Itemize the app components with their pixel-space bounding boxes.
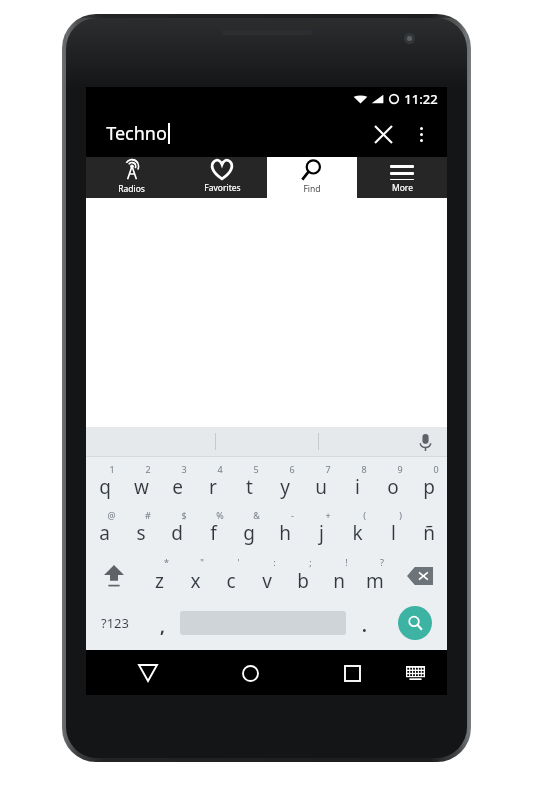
staticText: $ [181, 509, 187, 521]
staticText: d [171, 520, 183, 546]
staticText: g [243, 520, 255, 546]
button[interactable]: ' [213, 552, 249, 600]
button[interactable]: More [357, 157, 447, 198]
staticText: 1 [109, 463, 115, 475]
staticText: . [362, 614, 367, 637]
button[interactable]: % [195, 506, 231, 552]
button[interactable]: 0 [411, 460, 447, 506]
staticText: p [423, 474, 435, 500]
button[interactable]: Radios [86, 157, 177, 198]
staticText: + [325, 509, 331, 521]
staticText: 4 [217, 463, 223, 475]
staticText: 5 [253, 463, 259, 475]
button[interactable]: $ [159, 506, 195, 552]
staticText: z [155, 568, 164, 594]
button[interactable]: Recents [330, 651, 374, 695]
button[interactable]: 6 [267, 460, 303, 506]
staticText: c [226, 568, 236, 594]
button[interactable]: 1 [86, 460, 123, 506]
staticText: v [262, 568, 272, 594]
button[interactable]: ( [339, 506, 375, 552]
staticText: u [315, 474, 327, 500]
staticText: Techno [106, 121, 167, 146]
staticText: ?123 [101, 614, 129, 632]
button[interactable]: 3 [159, 460, 195, 506]
staticText: r [209, 474, 217, 500]
button[interactable]: Hide keyboard [395, 653, 435, 693]
button[interactable]: * [141, 552, 177, 600]
button[interactable]: Shift [86, 552, 141, 600]
staticText: , [160, 615, 165, 638]
staticText: 11:22 [404, 90, 438, 108]
staticText: s [136, 520, 146, 546]
button[interactable]: Find [267, 157, 357, 198]
staticText: ; [309, 556, 312, 568]
staticText: ) [399, 509, 402, 521]
button[interactable]: Search [398, 606, 432, 640]
staticText: w [134, 474, 149, 500]
staticText: 0 [433, 463, 439, 475]
staticText: x [190, 568, 201, 594]
button[interactable]: 4 [195, 460, 231, 506]
staticText: @ [107, 509, 116, 521]
button[interactable]: + [303, 506, 339, 552]
staticText: b [297, 568, 309, 594]
button[interactable]: Voice input [413, 430, 437, 454]
staticText: * [164, 556, 169, 568]
button[interactable]: 2 [123, 460, 159, 506]
button[interactable]: Home [228, 651, 272, 695]
button[interactable]: ?123 [86, 600, 144, 646]
staticText: f [210, 520, 217, 546]
button[interactable]: & [231, 506, 267, 552]
staticText: More [392, 182, 413, 194]
button[interactable]: ? [357, 552, 393, 600]
button[interactable]: . [346, 600, 382, 646]
button[interactable]: 9 [375, 460, 411, 506]
button[interactable]: , [144, 600, 180, 646]
staticText: a [99, 520, 110, 546]
staticText: ( [363, 509, 366, 521]
staticText: 2 [145, 463, 151, 475]
button[interactable]: ) [375, 506, 411, 552]
button[interactable]: Favorites [177, 157, 267, 198]
button[interactable]: ñ [411, 506, 447, 552]
staticText: l [391, 520, 396, 546]
staticText: 8 [361, 463, 367, 475]
staticText: ' [237, 556, 240, 568]
button[interactable]: ! [321, 552, 357, 600]
button[interactable]: Backspace [393, 552, 447, 600]
button[interactable]: ; [285, 552, 321, 600]
staticText: y [280, 474, 290, 500]
staticText: j [319, 520, 324, 546]
staticText: # [145, 509, 151, 521]
button[interactable]: @ [86, 506, 123, 552]
staticText: t [246, 474, 253, 500]
staticText: - [291, 509, 294, 521]
button[interactable]: More options [403, 116, 439, 152]
staticText: h [279, 520, 291, 546]
staticText: k [352, 520, 363, 546]
button[interactable]: 8 [339, 460, 375, 506]
staticText: Favorites [204, 182, 241, 194]
button[interactable]: 5 [231, 460, 267, 506]
staticText: o [387, 474, 399, 500]
staticText: & [253, 509, 260, 521]
staticText: % [216, 509, 224, 521]
staticText: ? [380, 556, 384, 568]
button[interactable]: Clear search [363, 114, 403, 154]
button[interactable]: Back [126, 651, 170, 695]
button[interactable]: " [177, 552, 213, 600]
button[interactable]: : [249, 552, 285, 600]
staticText: " [200, 556, 204, 568]
staticText: 6 [289, 463, 295, 475]
staticText: Radios [118, 183, 145, 195]
button[interactable]: 7 [303, 460, 339, 506]
button[interactable]: # [123, 506, 159, 552]
staticText: 9 [397, 463, 403, 475]
staticText: : [273, 556, 276, 568]
staticText: ñ [423, 520, 435, 546]
staticText: m [366, 568, 384, 594]
button[interactable]: - [267, 506, 303, 552]
staticText: 7 [325, 463, 331, 475]
